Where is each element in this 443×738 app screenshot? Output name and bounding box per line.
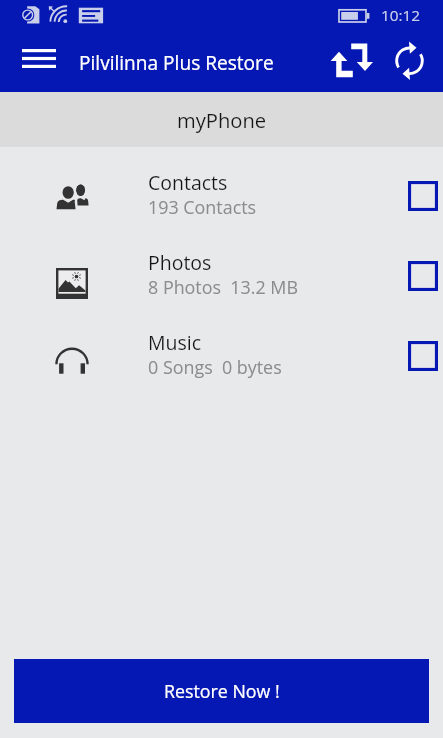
staticText: Photos [148, 249, 212, 276]
staticText: Music [148, 329, 202, 356]
button[interactable]: Restore Now ! [14, 659, 429, 723]
button[interactable]: Select Contacts [408, 181, 438, 211]
staticText: 8 Photos 13.2 MB [148, 275, 299, 299]
button[interactable]: Contacts [0, 158, 443, 238]
button[interactable]: Select Music [408, 341, 438, 371]
button[interactable]: Transfer [325, 38, 379, 84]
button[interactable]: Menu [10, 38, 68, 78]
button[interactable]: Photos [0, 238, 443, 318]
button[interactable]: Music [0, 318, 443, 398]
staticText: 0 Songs 0 bytes [148, 355, 282, 379]
staticText: myPhone [177, 106, 267, 134]
staticText: Restore Now ! [164, 679, 280, 703]
button[interactable]: Select Photos [408, 261, 438, 291]
staticText: 193 Contacts [148, 195, 257, 219]
staticText: Pilvilinna Plus Restore [79, 50, 274, 76]
button[interactable]: Refresh [386, 38, 434, 84]
staticText: 10:12 [381, 5, 421, 26]
staticText: Contacts [148, 169, 228, 196]
